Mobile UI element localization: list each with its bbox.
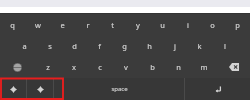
staticText: r (86, 20, 90, 30)
staticText: u (160, 20, 165, 30)
staticText: d (72, 41, 77, 51)
staticText: z (46, 62, 50, 72)
button[interactable]: p (225, 14, 250, 35)
button[interactable]: n (165, 56, 191, 78)
button[interactable]: z (34, 56, 61, 78)
button[interactable]: g (112, 35, 137, 56)
staticText: q (10, 20, 15, 30)
button[interactable]: e (50, 14, 75, 35)
button[interactable]: h (137, 35, 162, 56)
staticText: y (136, 20, 140, 30)
button[interactable]: y (125, 14, 150, 35)
staticText: p (235, 20, 240, 30)
button[interactable]: Switch language (0, 56, 34, 78)
button[interactable]: v (113, 56, 139, 78)
button[interactable]: Emoji (27, 78, 53, 100)
button[interactable]: r (75, 14, 100, 35)
staticText: c (98, 62, 102, 72)
button[interactable]: Enter (185, 78, 250, 100)
staticText: w (35, 20, 41, 30)
button[interactable]: i (175, 14, 200, 35)
button[interactable]: k (187, 35, 212, 56)
button[interactable]: j (162, 35, 187, 56)
staticText: b (150, 62, 155, 72)
button[interactable]: t (100, 14, 125, 35)
button[interactable]: x (61, 56, 87, 78)
button[interactable]: w (25, 14, 50, 35)
button[interactable]: d (62, 35, 87, 56)
button[interactable]: Backspace (217, 56, 250, 78)
button[interactable]: Symbols (0, 78, 26, 100)
staticText: n (176, 62, 181, 72)
staticText: l (224, 41, 226, 51)
staticText: g (122, 41, 127, 51)
button[interactable]: s (37, 35, 62, 56)
staticText: h (147, 41, 152, 51)
staticText: j (174, 41, 176, 51)
button[interactable]: u (150, 14, 175, 35)
staticText: x (72, 62, 76, 72)
button[interactable]: l (212, 35, 237, 56)
staticText: e (60, 20, 65, 30)
button[interactable]: q (0, 14, 25, 35)
button[interactable]: a (12, 35, 37, 56)
button[interactable]: c (87, 56, 113, 78)
staticText: i (187, 20, 189, 30)
staticText: k (197, 41, 202, 51)
button[interactable]: f (87, 35, 112, 56)
staticText: o (210, 20, 215, 30)
staticText: s (48, 41, 52, 51)
button[interactable]: space (54, 78, 184, 100)
button[interactable]: m (191, 56, 217, 78)
button[interactable]: b (139, 56, 165, 78)
staticText: t (111, 20, 114, 30)
staticText: space (111, 85, 128, 93)
button[interactable]: o (200, 14, 225, 35)
staticText: f (98, 41, 101, 51)
staticText: a (22, 41, 27, 51)
staticText: m (200, 62, 208, 72)
staticText: v (124, 62, 128, 72)
